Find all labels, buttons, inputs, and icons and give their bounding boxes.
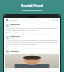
button[interactable] [6, 32, 11, 33]
button[interactable] [20, 69, 25, 70]
button[interactable] [20, 32, 25, 33]
button[interactable] [6, 69, 11, 70]
button[interactable] [13, 46, 18, 47]
button[interactable] [13, 32, 18, 33]
staticText: Connect with friends [0, 9, 64, 12]
button[interactable]: More options [5, 35, 59, 48]
button[interactable] [6, 46, 11, 47]
button[interactable]: Save [5, 49, 59, 71]
button[interactable] [13, 69, 18, 70]
staticText: Social Feed [0, 3, 64, 8]
button[interactable]: More options [5, 23, 59, 34]
button[interactable] [20, 46, 25, 47]
